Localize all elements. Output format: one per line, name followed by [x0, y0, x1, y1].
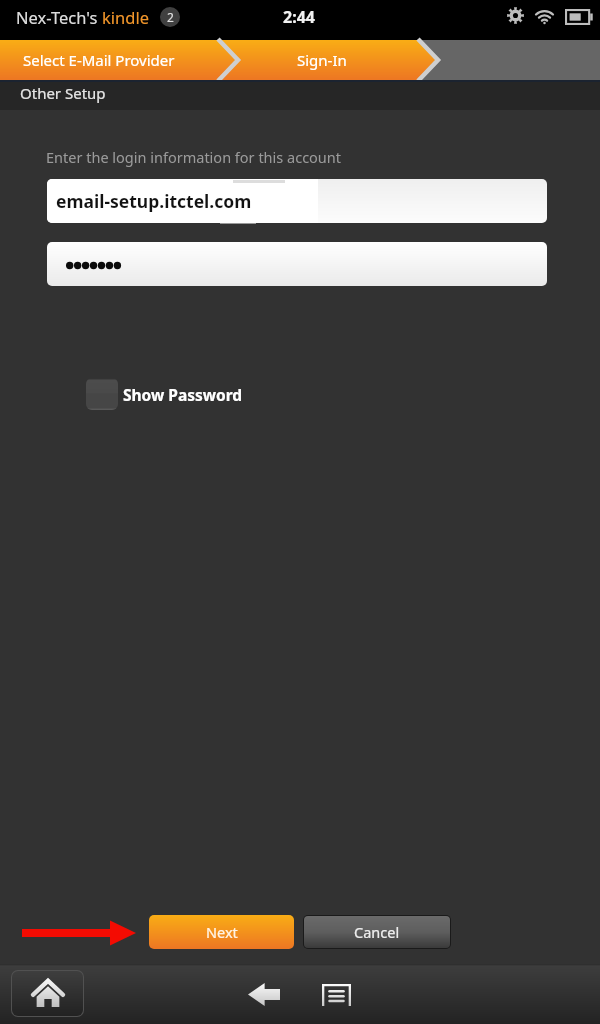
button[interactable] — [47, 242, 547, 286]
other: Battery — [565, 9, 593, 25]
other: Wi-Fi — [533, 8, 556, 23]
button[interactable]: Home — [12, 971, 83, 1016]
button[interactable]: Sign-In — [297, 50, 347, 70]
staticText: 2 — [167, 9, 174, 25]
staticText: Next — [206, 922, 238, 942]
button[interactable]: email-setup.itctel.com — [47, 179, 547, 223]
button[interactable]: Show Password — [86, 378, 243, 410]
button[interactable]: Next — [149, 915, 294, 949]
staticText: kindle — [102, 6, 149, 28]
other: Settings — [507, 7, 524, 24]
staticText: Show Password — [123, 384, 243, 405]
staticText: email-setup.itctel.com — [56, 189, 252, 213]
staticText: Nex-Tech's — [16, 6, 102, 28]
button[interactable]: Cancel — [304, 916, 450, 948]
staticText: Cancel — [354, 922, 400, 942]
button[interactable]: Back — [242, 972, 286, 1016]
button[interactable]: Select E-Mail Provider — [23, 50, 175, 70]
staticText: Enter the login information for this acc… — [46, 147, 342, 167]
staticText: Other Setup — [20, 83, 106, 103]
staticText: 2:44 — [283, 6, 315, 28]
button[interactable]: Menu — [314, 972, 358, 1016]
